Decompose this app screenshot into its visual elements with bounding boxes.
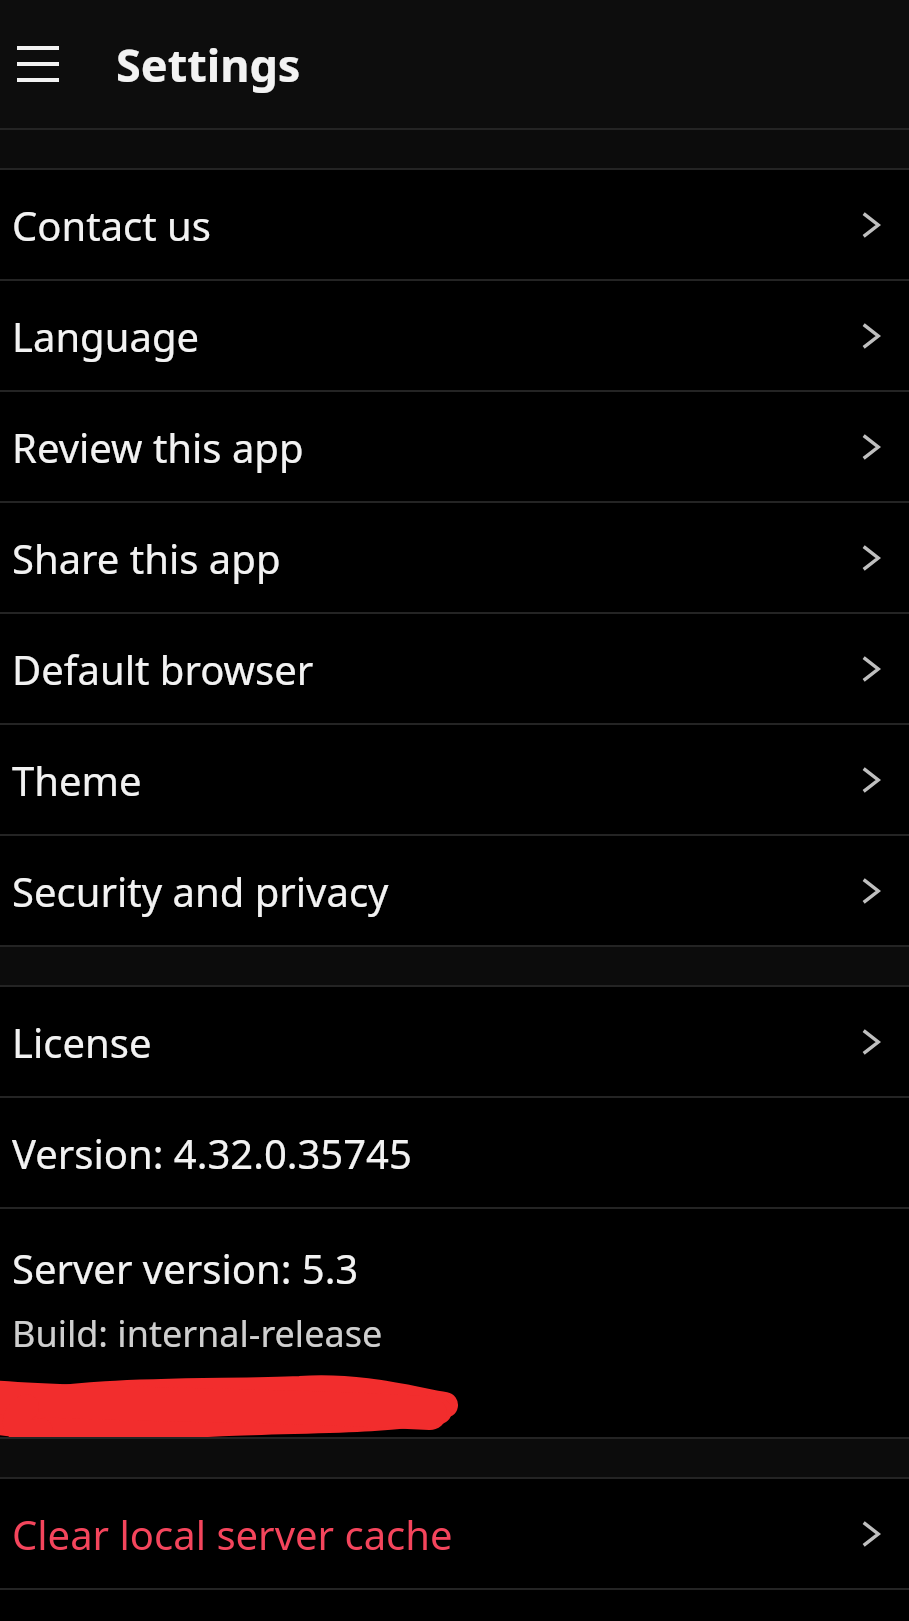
- staticText: Theme: [12, 753, 839, 807]
- button[interactable]: Default browser: [0, 614, 909, 723]
- button[interactable]: Language: [0, 281, 909, 390]
- staticText: Contact us: [12, 198, 839, 252]
- staticText: Review this app: [12, 420, 839, 474]
- staticText: License: [12, 1015, 839, 1069]
- button[interactable]: Review this app: [0, 392, 909, 501]
- staticText: Language: [12, 309, 839, 363]
- button[interactable]: Theme: [0, 725, 909, 834]
- button[interactable]: Open navigation menu: [0, 24, 76, 104]
- staticText: Settings: [116, 34, 301, 95]
- staticText: Share this app: [12, 531, 839, 585]
- staticText: Security and privacy: [12, 864, 839, 918]
- button[interactable]: Share this app: [0, 503, 909, 612]
- button[interactable]: Security and privacy: [0, 836, 909, 945]
- staticText: Server version: 5.3: [12, 1241, 359, 1295]
- staticText: Version: 4.32.0.35745: [12, 1126, 412, 1180]
- staticText: Default browser: [12, 642, 839, 696]
- staticText: Build: internal-release: [12, 1309, 383, 1358]
- button[interactable]: Clear local server cache: [0, 1479, 909, 1588]
- button[interactable]: Contact us: [0, 170, 909, 279]
- staticText: Clear local server cache: [12, 1507, 839, 1561]
- button[interactable]: License: [0, 987, 909, 1096]
